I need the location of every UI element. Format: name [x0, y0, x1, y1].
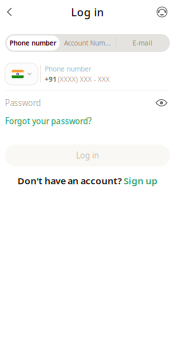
staticText: Phone number — [45, 64, 92, 73]
staticText: E-mail — [132, 39, 152, 47]
staticText: +91 — [45, 75, 57, 84]
button[interactable]: Account Num... — [60, 35, 116, 50]
button[interactable]: Select country code — [5, 63, 38, 85]
button[interactable]: Back — [4, 5, 15, 19]
button[interactable]: Phone number — [7, 35, 60, 50]
staticText: Account Num... — [64, 39, 111, 47]
button[interactable]: Forgot your password? — [5, 116, 92, 126]
staticText: Password — [5, 97, 41, 108]
staticText: Log in — [71, 5, 104, 19]
button[interactable]: Show password — [153, 96, 170, 110]
button[interactable]: Log in — [5, 144, 170, 166]
staticText: Sign up — [123, 174, 157, 187]
staticText: Don't have an account? — [17, 174, 121, 187]
staticText: Phone number — [10, 39, 57, 47]
button[interactable]: E-mail — [116, 35, 168, 50]
button[interactable]: Sign up — [123, 174, 157, 187]
staticText: (XXXX) XXX - XXX — [58, 75, 110, 84]
staticText: Log in — [76, 150, 99, 161]
button[interactable]: Support — [153, 3, 171, 21]
staticText: Forgot your password? — [5, 116, 92, 126]
